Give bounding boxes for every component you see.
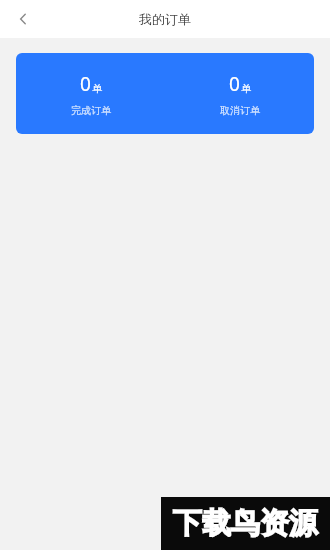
staticText: 我的订单 xyxy=(139,11,191,27)
staticText: 单 xyxy=(92,82,102,95)
staticText: 取消订单 xyxy=(220,104,260,117)
staticText: 完成订单 xyxy=(71,104,111,117)
staticText: 下载鸟资源 xyxy=(173,505,318,542)
staticText: 0 xyxy=(229,71,240,97)
staticText: 0 xyxy=(80,71,91,97)
button[interactable]: Back xyxy=(8,4,38,34)
button[interactable]: 0 xyxy=(16,53,165,134)
button[interactable]: 0 xyxy=(165,53,314,134)
staticText: 单 xyxy=(241,82,251,95)
